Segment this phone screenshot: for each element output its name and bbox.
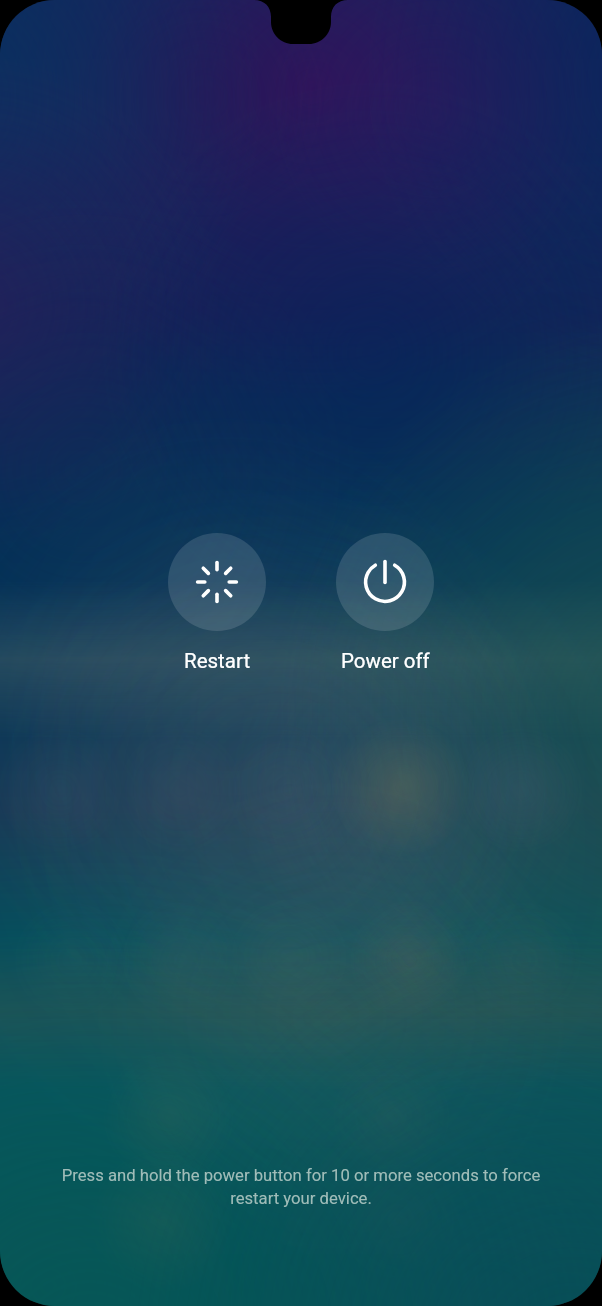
other: Restart: [168, 533, 266, 631]
button[interactable]: Power off: [336, 533, 434, 673]
button[interactable]: Restart: [168, 533, 266, 673]
staticText: Press and hold the power button for 10 o…: [0, 1166, 602, 1208]
staticText: Power off: [341, 649, 430, 673]
staticText: Restart: [184, 649, 251, 673]
other: Power off: [336, 533, 434, 631]
